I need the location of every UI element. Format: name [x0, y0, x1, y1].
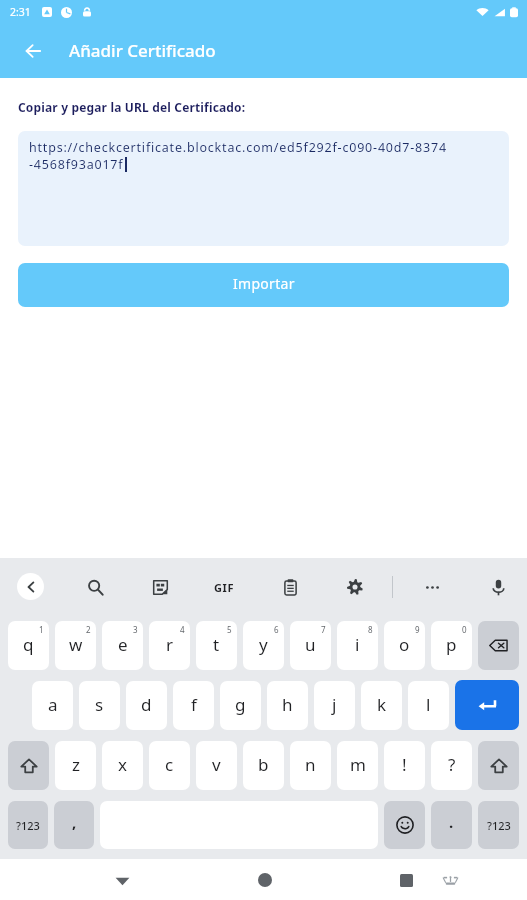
staticText: w [69, 633, 83, 656]
button[interactable]: v [196, 741, 237, 790]
staticText: r [166, 633, 174, 656]
button[interactable]: https://checkcertificate.blocktac.com/ed… [18, 131, 509, 246]
button[interactable]: Importar [18, 263, 509, 307]
staticText: t [213, 633, 220, 656]
button[interactable]: n [290, 741, 331, 790]
staticText: 2 [86, 624, 91, 635]
button[interactable]: Shift [8, 741, 49, 790]
button[interactable]: GIF [210, 573, 238, 601]
staticText: h [282, 693, 293, 716]
staticText: https://checkcertificate.blocktac.com/ed… [29, 139, 447, 156]
button[interactable]: Symbols [8, 801, 48, 849]
staticText: ?123 [16, 818, 40, 833]
button[interactable]: g [220, 681, 261, 730]
button[interactable]: Emoji [384, 801, 425, 849]
button[interactable]: y [243, 621, 284, 670]
button[interactable]: l [408, 681, 449, 730]
staticText: o [399, 633, 410, 656]
staticText: 4 [180, 624, 185, 635]
button[interactable]: m [337, 741, 378, 790]
button[interactable]: Comma [54, 801, 94, 849]
staticText: 7 [321, 624, 326, 635]
staticText: k [377, 693, 387, 716]
button[interactable]: Backspace [478, 621, 519, 670]
staticText: d [141, 693, 152, 716]
button[interactable]: j [314, 681, 355, 730]
button[interactable]: b [243, 741, 284, 790]
staticText: 3 [133, 624, 138, 635]
staticText: i [355, 633, 360, 656]
staticText: l [426, 693, 431, 716]
button[interactable]: Settings [341, 573, 369, 601]
staticText: p [446, 633, 457, 656]
staticText: x [118, 753, 127, 776]
staticText: ?123 [487, 818, 511, 833]
staticText: 8 [368, 624, 373, 635]
staticText: n [305, 753, 316, 776]
button[interactable]: Recents [391, 865, 421, 895]
staticText: ! [402, 753, 407, 776]
staticText: e [118, 633, 128, 656]
button[interactable]: i [337, 621, 378, 670]
staticText: 1 [39, 624, 44, 635]
button[interactable]: ? [431, 741, 472, 790]
staticText: v [212, 753, 221, 776]
staticText: Copiar y pegar la URL del Certificado: [18, 99, 246, 115]
staticText: Añadir Certificado [69, 39, 216, 62]
staticText: , [72, 812, 77, 832]
button[interactable]: h [267, 681, 308, 730]
button[interactable]: d [126, 681, 167, 730]
staticText: ? [448, 753, 456, 776]
staticText: q [23, 633, 34, 656]
button[interactable]: k [361, 681, 402, 730]
button[interactable]: Shift [478, 741, 519, 790]
button[interactable]: Home [250, 865, 280, 895]
button[interactable]: Voice input [484, 573, 512, 601]
button[interactable]: Back [107, 865, 137, 895]
staticText: u [305, 633, 316, 656]
staticText: -4568f93a017f [29, 156, 124, 173]
staticText: m [350, 753, 366, 776]
button[interactable]: Period [431, 801, 472, 849]
button[interactable]: Previous [17, 573, 44, 600]
button[interactable]: Stickers [146, 573, 174, 601]
button[interactable]: c [149, 741, 190, 790]
staticText: s [95, 693, 104, 716]
button[interactable]: q [8, 621, 49, 670]
button[interactable]: u [290, 621, 331, 670]
staticText: g [235, 693, 246, 716]
button[interactable]: a [32, 681, 73, 730]
staticText: 5 [227, 624, 232, 635]
button[interactable]: e [102, 621, 143, 670]
button[interactable]: f [173, 681, 214, 730]
button[interactable]: Symbols [478, 801, 519, 849]
button[interactable]: t [196, 621, 237, 670]
staticText: z [72, 753, 80, 776]
staticText: GIF [214, 580, 235, 595]
staticText: 0 [462, 624, 467, 635]
button[interactable]: ! [384, 741, 425, 790]
button[interactable]: p [431, 621, 472, 670]
staticText: Importar [233, 274, 295, 293]
staticText: 9 [415, 624, 420, 635]
staticText: a [48, 693, 58, 716]
staticText: y [259, 633, 268, 656]
button[interactable]: s [79, 681, 120, 730]
staticText: b [258, 753, 269, 776]
button[interactable]: z [55, 741, 96, 790]
button[interactable]: Switch keyboard [435, 865, 465, 895]
button[interactable]: r [149, 621, 190, 670]
staticText: 2:31 [10, 5, 31, 19]
staticText: 6 [274, 624, 279, 635]
staticText: f [191, 693, 197, 716]
button[interactable]: x [102, 741, 143, 790]
button[interactable]: Clipboard [276, 573, 304, 601]
button[interactable]: o [384, 621, 425, 670]
button[interactable]: More [418, 573, 446, 601]
button[interactable]: Back [13, 31, 53, 71]
button[interactable]: w [55, 621, 96, 670]
button[interactable]: Search [81, 573, 109, 601]
staticText: . [449, 812, 454, 832]
button[interactable]: Enter [455, 680, 519, 730]
